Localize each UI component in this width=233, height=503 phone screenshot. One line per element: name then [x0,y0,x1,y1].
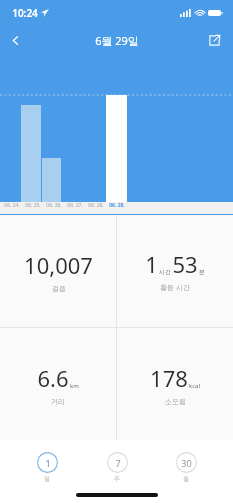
staticText: 1 [145,249,158,279]
button[interactable]: 1 [24,450,70,485]
staticText: 거리 [51,397,65,406]
button[interactable]: 6.6 [0,328,116,440]
button[interactable]: Share [199,26,229,54]
staticText: 10:24 [12,6,38,20]
staticText: 주 [114,475,120,483]
staticText: 소모됨 [165,397,186,406]
staticText: 178 [150,363,188,393]
staticText: 53 [172,249,198,279]
staticText: 6월 29일 [95,33,139,48]
staticText: 06. 25. [25,202,41,209]
staticText: 10,007 [24,250,93,280]
button[interactable]: 30 [163,450,209,485]
staticText: 06. 27. [67,202,83,209]
staticText: kcal [189,382,200,390]
staticText: 06. 29. [109,202,125,209]
staticText: 시간 [159,268,171,276]
staticText: 30 [181,457,192,469]
staticText: 7 [115,457,121,469]
staticText: 6.6 [37,363,69,393]
staticText: 06. 28. [88,202,104,209]
staticText: 분 [199,268,205,276]
staticText: km [70,382,79,390]
staticText: 활동 시간 [160,283,190,293]
staticText: 월 [183,475,189,483]
staticText: 06. 26. [46,202,62,209]
button[interactable]: 10,007 [0,215,116,327]
staticText: 1 [45,457,51,469]
button[interactable]: 7 [94,450,140,485]
staticText: 06. 24. [4,202,20,209]
button[interactable]: Back [0,26,30,54]
staticText: 걸음 [52,284,66,293]
staticText: 일 [44,475,50,483]
button[interactable]: 178 [117,328,233,440]
button[interactable]: 1 [117,215,233,327]
